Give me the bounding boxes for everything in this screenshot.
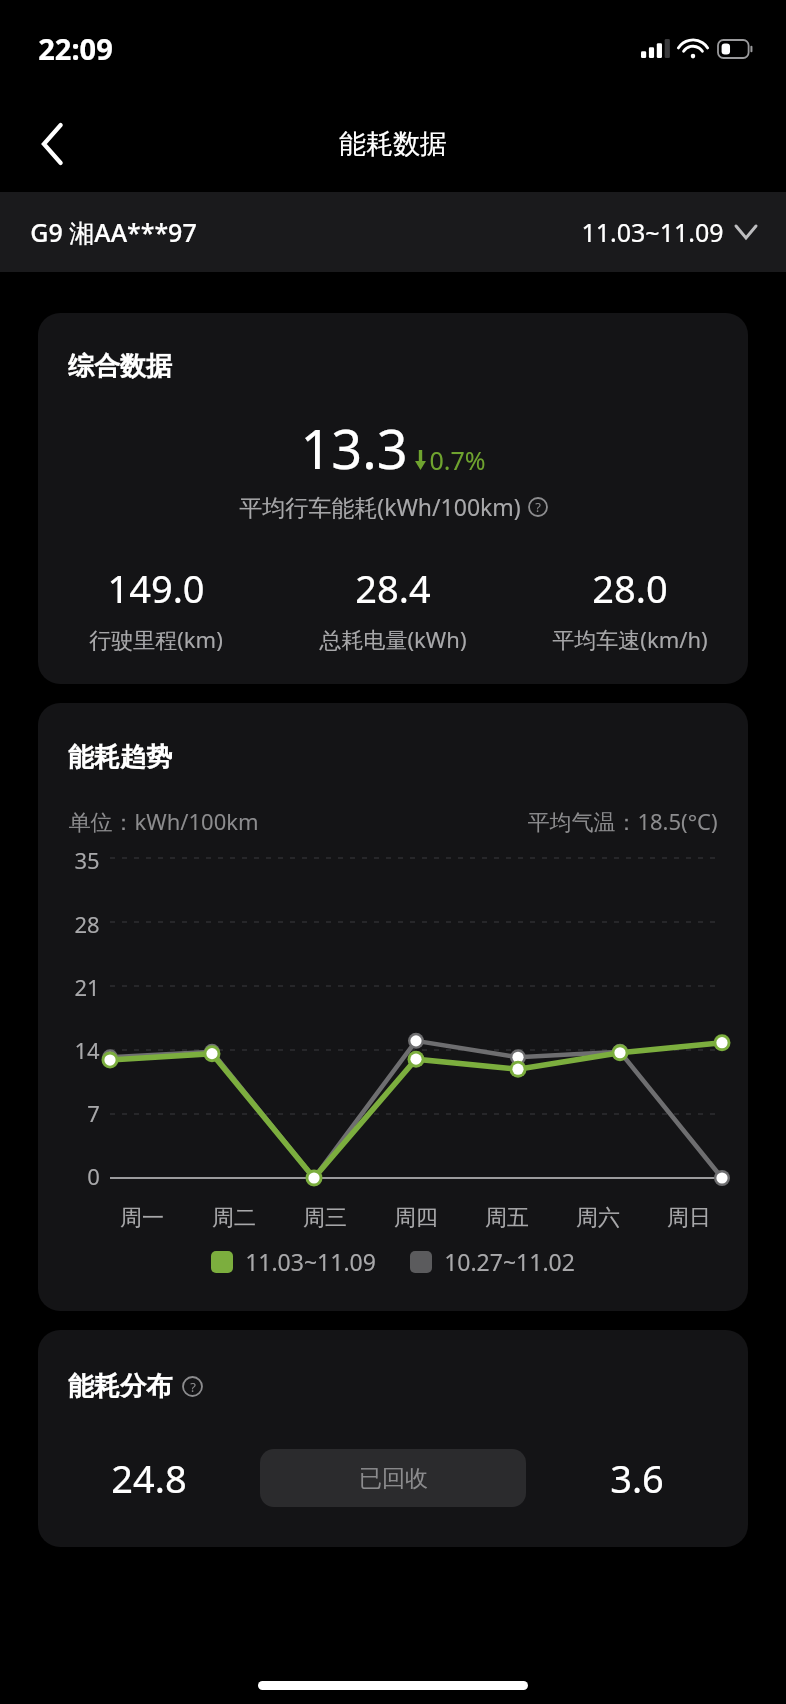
staticText: 24.8: [111, 1452, 187, 1504]
staticText: 21: [74, 972, 100, 1002]
staticText: 11.03~11.09: [245, 1246, 376, 1277]
staticText: 0.7%: [429, 443, 486, 477]
staticText: 35: [74, 845, 100, 875]
staticText: 总耗电量(kWh): [319, 624, 467, 654]
staticText: 周三: [303, 1204, 347, 1232]
staticText: ?: [190, 1378, 196, 1396]
staticText: 0: [87, 1161, 100, 1191]
staticText: 28.4: [355, 562, 431, 614]
button[interactable]: 28.4: [274, 562, 511, 654]
staticText: 149.0: [107, 562, 205, 614]
button[interactable]: G9 湘AA***97: [0, 192, 786, 272]
button[interactable]: 11.03~11.09: [211, 1246, 376, 1277]
button[interactable]: 能耗分布: [38, 1330, 748, 1547]
staticText: 14: [74, 1035, 100, 1065]
staticText: 周六: [576, 1204, 620, 1232]
staticText: 周日: [667, 1204, 711, 1232]
staticText: 13.3: [300, 411, 408, 485]
staticText: 平均气温：18.5(°C): [527, 806, 718, 836]
staticText: 10.27~11.02: [444, 1246, 575, 1277]
staticText: 周四: [394, 1204, 438, 1232]
staticText: 综合数据: [68, 350, 172, 383]
staticText: 11.03~11.09: [581, 215, 724, 249]
staticText: 7: [87, 1098, 100, 1128]
staticText: 平均车速(km/h): [552, 624, 708, 654]
button[interactable]: 28.0: [511, 562, 748, 654]
staticText: 已回收: [359, 1464, 428, 1493]
staticText: 能耗分布: [68, 1370, 172, 1403]
button[interactable]: Back: [22, 113, 84, 175]
staticText: 周二: [212, 1204, 256, 1232]
button[interactable]: 能耗趋势: [38, 703, 748, 1311]
staticText: 能耗趋势: [68, 741, 172, 774]
staticText: 28: [74, 909, 100, 939]
staticText: 能耗数据: [339, 127, 447, 161]
button[interactable]: 10.27~11.02: [410, 1246, 575, 1277]
staticText: 行驶里程(km): [89, 624, 223, 654]
staticText: 28.0: [592, 562, 668, 614]
staticText: 单位：kWh/100km: [68, 806, 259, 836]
button[interactable]: 149.0: [38, 562, 274, 654]
staticText: G9 湘AA***97: [30, 215, 197, 249]
staticText: 周五: [485, 1204, 529, 1232]
staticText: 周一: [120, 1204, 164, 1232]
button[interactable]: 综合数据: [38, 313, 748, 684]
staticText: 平均行车能耗(kWh/100km): [239, 491, 521, 522]
staticText: ?: [535, 498, 541, 516]
staticText: 22:09: [38, 29, 113, 68]
staticText: 3.6: [610, 1452, 664, 1504]
